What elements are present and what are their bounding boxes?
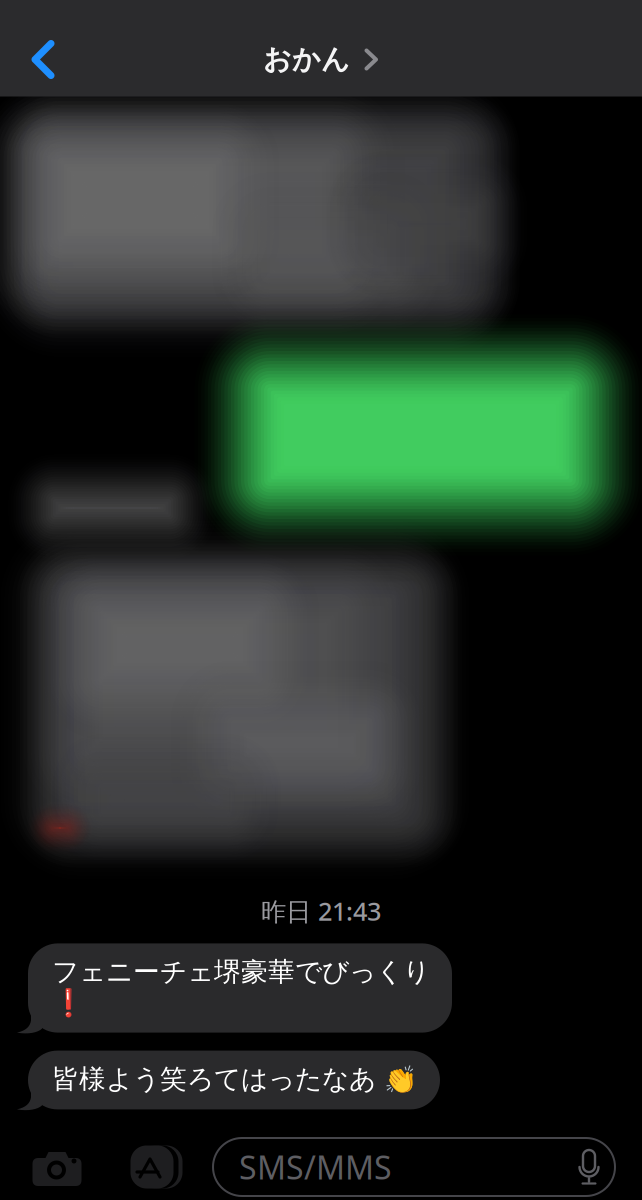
button[interactable]: Back bbox=[2, 21, 77, 98]
staticText: おかん bbox=[263, 42, 350, 77]
button[interactable]: Camera bbox=[32, 1146, 82, 1188]
staticText: SMS/MMS bbox=[239, 1146, 392, 1188]
button[interactable]: App Store bbox=[124, 1145, 180, 1189]
button[interactable]: 皆様よう笑ろてはったなあ 👏 bbox=[28, 1051, 440, 1109]
button[interactable]: おかん bbox=[253, 29, 389, 90]
staticText: フェニーチェ堺豪華でびっくり❗ bbox=[52, 955, 430, 1019]
button[interactable]: フェニーチェ堺豪華でびっくり❗ bbox=[28, 943, 452, 1033]
button[interactable]: SMS/MMS bbox=[213, 1138, 615, 1196]
staticText: 皆様よう笑ろてはったなあ 👏 bbox=[52, 1063, 417, 1095]
staticText: 昨日 21:43 bbox=[261, 894, 381, 928]
